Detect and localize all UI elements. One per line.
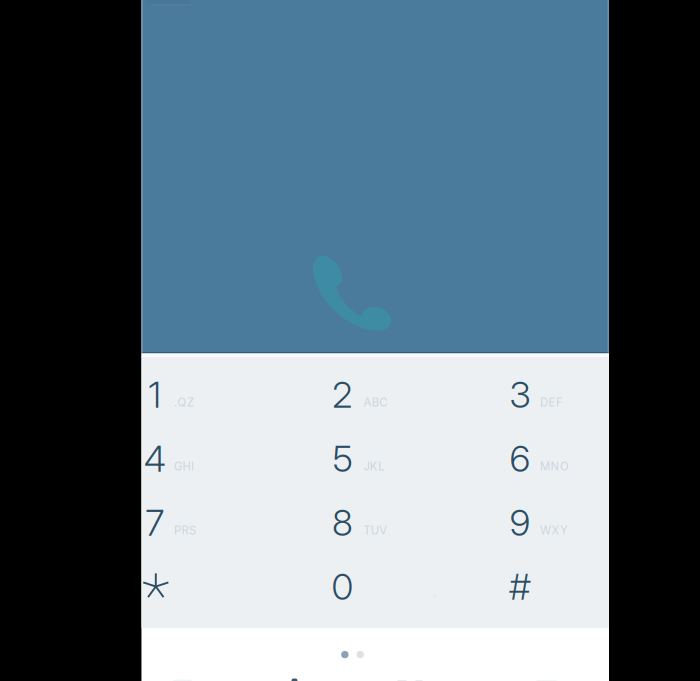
button[interactable]	[144, 554, 294, 618]
button[interactable]: 0	[331, 554, 481, 618]
staticText: 3	[509, 373, 530, 416]
staticText: 5	[332, 437, 352, 480]
staticText: DEF	[540, 395, 563, 409]
button[interactable]: #	[509, 554, 659, 618]
staticText: 9	[509, 501, 530, 544]
staticText: ABC	[363, 395, 387, 409]
button[interactable]: Favourites	[141, 0, 160, 4]
button[interactable]: 1	[144, 362, 294, 426]
button[interactable]: 5	[331, 426, 481, 490]
staticText: JKL	[363, 459, 384, 473]
button[interactable]: 6	[509, 426, 659, 490]
button[interactable]: 8	[331, 490, 481, 554]
button[interactable]: 4	[144, 426, 294, 490]
staticText: .QZ	[174, 395, 194, 409]
staticText: MNO	[540, 459, 569, 473]
button[interactable]: 3	[509, 362, 659, 426]
button[interactable]: 2	[331, 362, 481, 426]
staticText: 7	[145, 501, 164, 544]
staticText: 8	[332, 501, 353, 544]
staticText: #	[509, 565, 531, 608]
staticText: 1	[148, 373, 161, 416]
staticText: 0	[331, 565, 353, 608]
staticText: 2	[332, 373, 353, 416]
button[interactable]: Voicemail	[141, 0, 162, 3]
staticText: WXY	[540, 523, 568, 537]
staticText: 4	[144, 437, 166, 480]
staticText: PRS	[174, 523, 196, 537]
button[interactable]: 9	[509, 490, 659, 554]
button[interactable]: Contacts	[141, 0, 181, 5]
staticText: TUV	[363, 523, 387, 537]
staticText: 6	[509, 437, 530, 480]
staticText: GHI	[174, 459, 194, 473]
button[interactable]: Keypad	[141, 0, 147, 4]
button[interactable]: 7	[144, 490, 294, 554]
